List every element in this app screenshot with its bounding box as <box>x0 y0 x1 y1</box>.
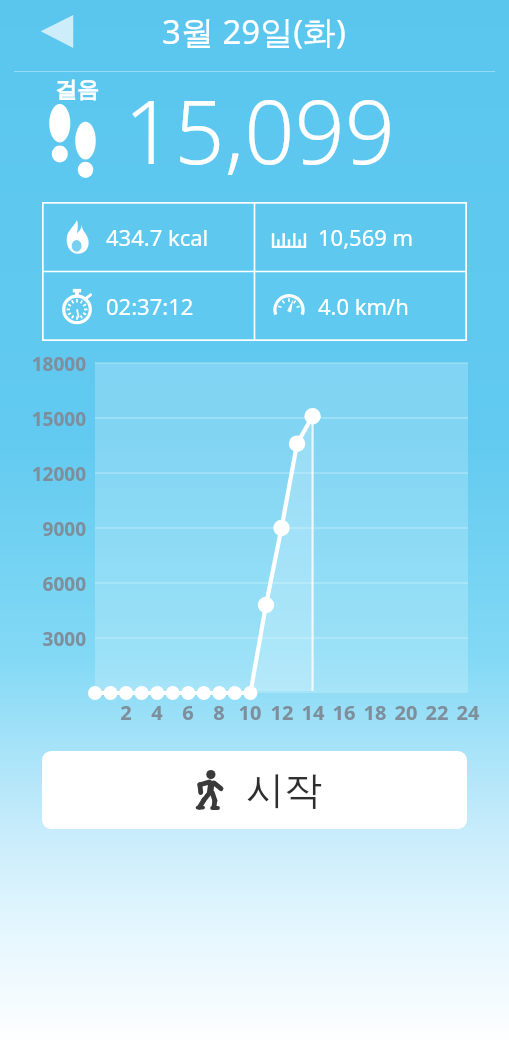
button[interactable]: 10,569 m <box>254 202 467 271</box>
staticText: 8 <box>205 699 233 726</box>
staticText: 12000 <box>0 461 86 487</box>
staticText: 10,569 m <box>318 222 414 252</box>
staticText: 4 <box>143 699 171 726</box>
staticText: 4.0 km/h <box>318 291 409 321</box>
staticText: 15000 <box>0 406 86 432</box>
button[interactable]: 02:37:12 <box>42 271 254 341</box>
button[interactable]: 시작 <box>42 751 467 829</box>
staticText: 20 <box>392 699 420 726</box>
staticText: 18 <box>361 699 389 726</box>
staticText: 12 <box>268 699 296 726</box>
staticText: 22 <box>423 699 451 726</box>
staticText: 시작 <box>246 766 322 814</box>
button[interactable]: Back <box>28 8 86 66</box>
staticText: 3월 29일(화) <box>162 9 347 54</box>
button[interactable]: 434.7 kcal <box>42 202 254 271</box>
staticText: 18000 <box>0 351 86 377</box>
staticText: 6 <box>174 699 202 726</box>
staticText: 10 <box>236 699 264 726</box>
staticText: 16 <box>330 699 358 726</box>
staticText: 3000 <box>0 626 86 652</box>
staticText: 14 <box>299 699 327 726</box>
staticText: 걸음 <box>55 76 99 104</box>
staticText: 15,099 <box>124 70 396 188</box>
staticText: 434.7 kcal <box>106 222 209 252</box>
staticText: 2 <box>112 699 140 726</box>
staticText: 9000 <box>0 516 86 542</box>
staticText: 24 <box>454 699 482 726</box>
staticText: 6000 <box>0 571 86 597</box>
staticText: 02:37:12 <box>106 291 194 321</box>
button[interactable]: 4.0 km/h <box>254 271 467 341</box>
